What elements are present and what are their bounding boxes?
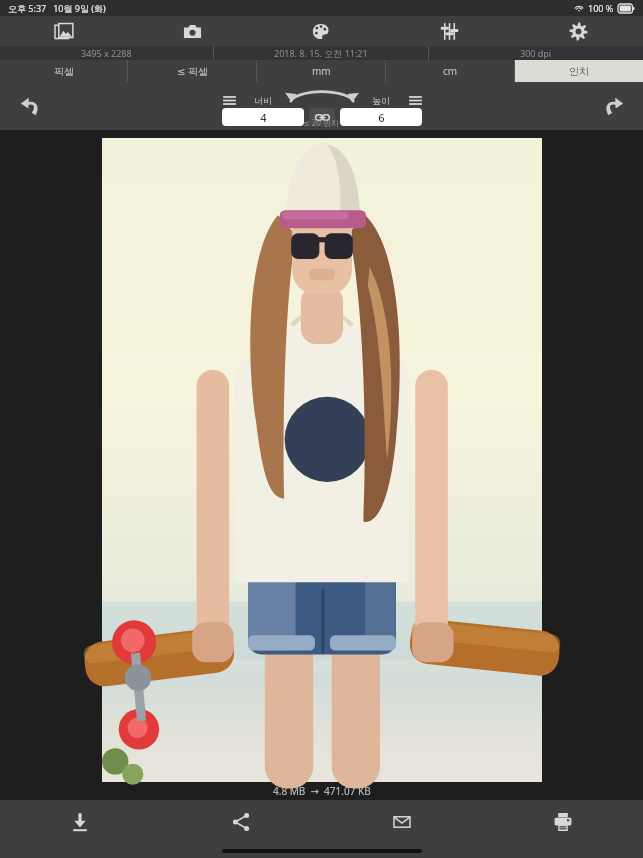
staticText: 4 [260,110,267,125]
staticText: 높이 [372,95,390,106]
button[interactable]: 4 [222,108,304,126]
button[interactable]: Email [321,800,482,844]
button[interactable]: Undo [14,90,46,122]
staticText: 6 [378,110,385,125]
button[interactable]: Redo [597,90,629,122]
staticText: 인치 [569,65,589,78]
button[interactable]: 3495 x 2288 [0,46,213,60]
button[interactable]: Print [482,800,643,844]
button[interactable]: Gallery [0,16,128,46]
button[interactable]: Height presets [408,93,422,107]
button[interactable]: Width presets [222,93,236,107]
staticText: 픽셀 [54,65,74,78]
button[interactable]: 픽셀 [0,60,127,82]
button[interactable]: Adjust [385,16,514,46]
staticText: 3495 x 2288 [81,47,132,59]
staticText: 100 % [588,2,614,14]
staticText: cm [443,64,458,78]
button[interactable]: cm [386,60,514,82]
staticText: 4.8 MB → 471.07 KB [273,784,371,798]
button[interactable]: mm [257,60,385,82]
button[interactable]: ≤ 픽셀 [128,60,256,82]
button[interactable]: Share [160,800,321,844]
button[interactable]: Link width and height [309,108,335,126]
staticText: 너비 [254,95,272,106]
button[interactable]: 6 [340,108,422,126]
staticText: 300 dpi [520,47,552,59]
staticText: ≤ 픽셀 [177,64,208,78]
button[interactable]: 2018. 8. 15. 오전 11:21 [214,46,428,60]
button[interactable]: 300 dpi [429,46,643,60]
button[interactable]: Effects [256,16,385,46]
button[interactable]: 인치 [515,60,643,82]
button[interactable]: Save [0,800,160,844]
staticText: 2018. 8. 15. 오전 11:21 [274,47,368,59]
staticText: 오후 5:37 10월 9일 (화) [8,2,106,14]
button[interactable]: Camera [128,16,256,46]
staticText: ≤ 20 인치 [303,117,340,128]
staticText: mm [312,64,331,78]
button[interactable]: Settings [514,16,643,46]
